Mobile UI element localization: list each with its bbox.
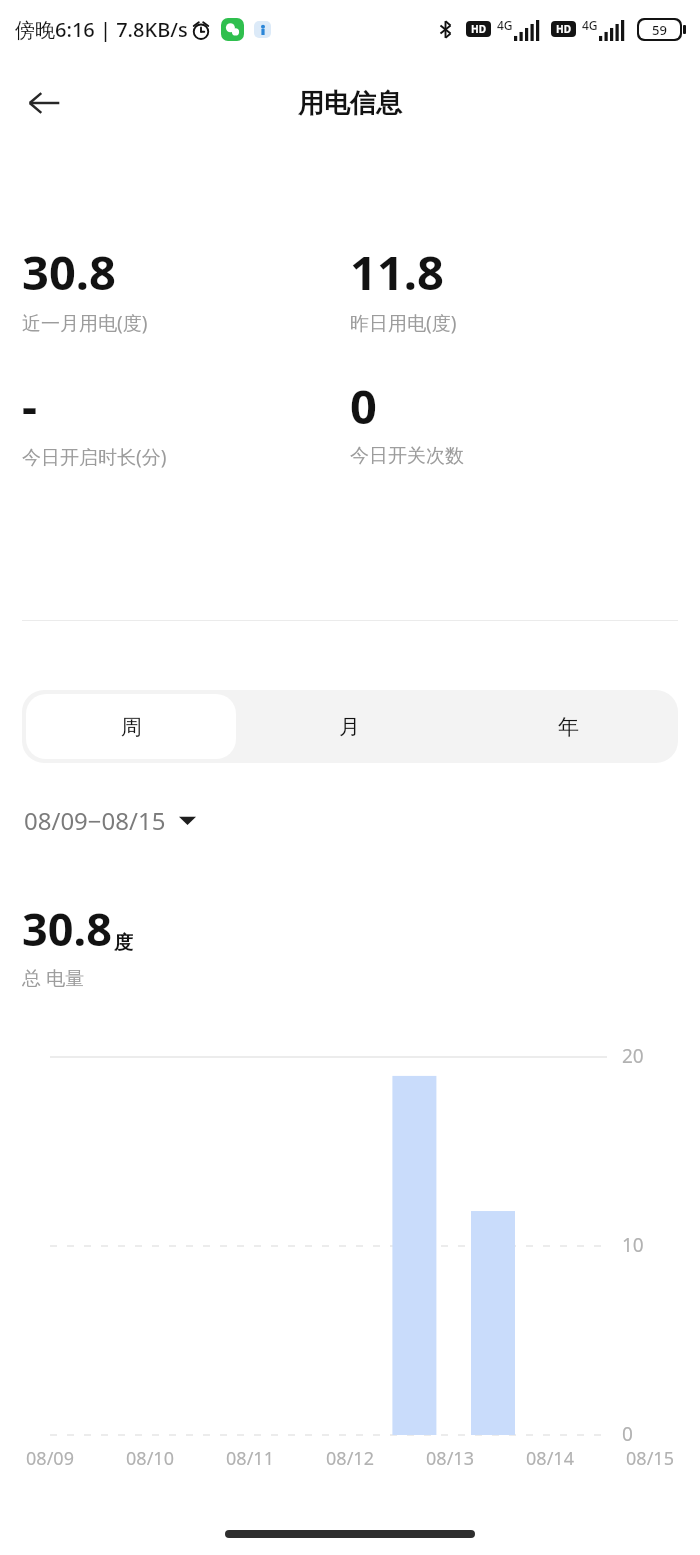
button[interactable]: 年 <box>459 690 678 763</box>
staticText: 傍晚6:16 | 7.8KB/s <box>15 16 188 43</box>
button[interactable]: 月 <box>240 690 459 763</box>
staticText: 10 <box>622 1232 644 1258</box>
staticText: 59 <box>652 21 667 39</box>
staticText: 08/09 <box>26 1446 74 1471</box>
button[interactable]: Back <box>18 77 70 129</box>
staticText: 08/14 <box>526 1446 574 1471</box>
staticText: - <box>22 374 38 436</box>
staticText: 08/09−08/15 <box>24 804 166 837</box>
staticText: 11.8 <box>350 240 444 302</box>
staticText: 昨日用电(度) <box>350 310 457 336</box>
staticText: 今日开启时长(分) <box>22 444 167 470</box>
staticText: 度 <box>114 931 133 955</box>
staticText: 0 <box>350 374 377 436</box>
staticText: 总 电量 <box>22 965 84 991</box>
staticText: 30.8 <box>22 898 112 959</box>
staticText: 30.8 <box>22 240 116 302</box>
staticText: 年 <box>558 714 579 740</box>
staticText: 0 <box>622 1421 633 1447</box>
button[interactable]: 08/09−08/15 <box>22 798 198 843</box>
staticText: 4G <box>497 17 513 33</box>
button[interactable]: 0 <box>350 374 678 468</box>
staticText: 周 <box>121 714 142 740</box>
button[interactable]: 30.8 <box>22 240 350 336</box>
staticText: 08/11 <box>226 1446 274 1471</box>
staticText: 20 <box>622 1043 644 1069</box>
staticText: 用电信息 <box>298 87 402 120</box>
staticText: 月 <box>339 714 360 740</box>
button[interactable]: 周 <box>26 694 236 759</box>
staticText: 今日开关次数 <box>350 444 464 468</box>
staticText: 4G <box>582 17 598 33</box>
staticText: 08/10 <box>126 1446 174 1471</box>
button[interactable]: - <box>22 374 350 470</box>
staticText: 08/13 <box>426 1446 474 1471</box>
staticText: 08/12 <box>326 1446 374 1471</box>
staticText: HD <box>556 22 571 36</box>
staticText: HD <box>471 22 486 36</box>
staticText: 08/15 <box>626 1446 674 1471</box>
staticText: 近一月用电(度) <box>22 310 148 336</box>
button[interactable]: 11.8 <box>350 240 678 336</box>
